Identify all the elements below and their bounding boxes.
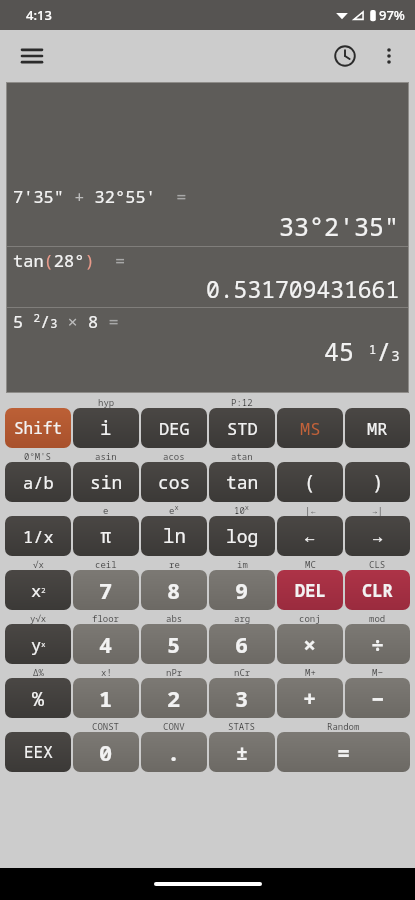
button[interactable]: i [73, 408, 139, 448]
button[interactable]: log [209, 516, 275, 556]
button[interactable]: 8 [141, 570, 207, 610]
button[interactable]: × [277, 624, 343, 664]
staticText: tan(28°) = [13, 249, 126, 272]
staticText: 0°M'S [24, 450, 52, 462]
staticText: ← [304, 523, 316, 549]
button[interactable]: 1 [73, 678, 139, 718]
button[interactable]: 2 [141, 678, 207, 718]
staticText: CLR [362, 579, 393, 602]
staticText: − [371, 683, 385, 713]
button[interactable]: Shift [5, 408, 71, 448]
staticText: ceil [95, 558, 117, 570]
staticText: nPr [166, 666, 183, 678]
staticText: 3 [235, 683, 249, 713]
button[interactable]: MS [277, 408, 343, 448]
button[interactable]: More options [367, 34, 411, 78]
button[interactable]: History [323, 34, 367, 78]
staticText: M+ [305, 666, 316, 678]
staticText: ± [236, 739, 248, 766]
staticText: y√x [30, 612, 47, 624]
staticText: 97% [379, 6, 405, 24]
button[interactable]: x2 [5, 570, 71, 610]
staticText: a/b [23, 471, 54, 494]
button[interactable]: ÷ [345, 624, 410, 664]
button[interactable]: = [277, 732, 410, 772]
staticText: Random [327, 720, 360, 732]
button[interactable]: ± [209, 732, 275, 772]
staticText: hyp [98, 396, 115, 408]
staticText: 45 1/3 [324, 334, 400, 368]
staticText: nCr [234, 666, 251, 678]
staticText: CLS [369, 558, 386, 570]
staticText: + [303, 683, 317, 713]
staticText: log [226, 524, 259, 549]
button[interactable]: CLR [345, 570, 410, 610]
button[interactable]: ) [345, 462, 410, 502]
staticText: 2 [167, 683, 181, 713]
staticText: M− [372, 666, 383, 678]
staticText: i [100, 415, 112, 441]
button[interactable]: 9 [209, 570, 275, 610]
staticText: yx [31, 633, 46, 656]
staticText: ) [372, 469, 384, 495]
staticText: STD [227, 417, 258, 440]
button[interactable]: − [345, 678, 410, 718]
button[interactable]: MR [345, 408, 410, 448]
button[interactable]: ln [141, 516, 207, 556]
staticText: floor [92, 612, 120, 624]
button[interactable]: ← [277, 516, 343, 556]
button[interactable]: 7 [73, 570, 139, 610]
staticText: . [167, 737, 181, 767]
button[interactable]: 5 [141, 624, 207, 664]
staticText: e [103, 504, 109, 516]
staticText: 0.531709431661 [206, 273, 400, 304]
button[interactable]: EEX [5, 732, 71, 772]
staticText: CONST [92, 720, 120, 732]
button[interactable]: % [5, 678, 71, 718]
staticText: 1/x [23, 525, 54, 548]
staticText: 10x [234, 503, 250, 516]
staticText: mod [369, 612, 386, 624]
staticText: P:12 [231, 396, 253, 408]
button[interactable]: cos [141, 462, 207, 502]
button[interactable]: sin [73, 462, 139, 502]
button[interactable]: 4 [73, 624, 139, 664]
button[interactable]: 3 [209, 678, 275, 718]
button[interactable]: DEG [141, 408, 207, 448]
staticText: ÷ [371, 629, 385, 659]
staticText: →| [372, 504, 383, 516]
staticText: CONV [163, 720, 185, 732]
staticText: re [169, 558, 180, 570]
staticText: sin [90, 470, 123, 495]
staticText: cos [158, 470, 191, 495]
staticText: arg [234, 612, 251, 624]
staticText: x2 [31, 579, 46, 602]
staticText: 7'35" + 32°55' = [13, 185, 187, 208]
button[interactable]: STD [209, 408, 275, 448]
staticText: √x [33, 558, 44, 570]
staticText: 0 [99, 737, 113, 767]
button[interactable]: 1/x [5, 516, 71, 556]
staticText: 4:13 [26, 6, 52, 24]
button[interactable]: ( [277, 462, 343, 502]
staticText: asin [95, 450, 117, 462]
button[interactable]: yx [5, 624, 71, 664]
staticText: → [372, 523, 384, 549]
staticText: DEG [159, 417, 190, 440]
button[interactable]: 6 [209, 624, 275, 664]
button[interactable]: π [73, 516, 139, 556]
button[interactable]: a/b [5, 462, 71, 502]
staticText: = [337, 737, 351, 767]
button[interactable]: . [141, 732, 207, 772]
button[interactable]: tan [209, 462, 275, 502]
button[interactable]: + [277, 678, 343, 718]
button[interactable]: → [345, 516, 410, 556]
staticText: conj [299, 612, 321, 624]
staticText: MR [367, 417, 388, 440]
staticText: Shift [14, 417, 63, 439]
button[interactable]: Menu [12, 36, 52, 76]
staticText: 5 [167, 629, 181, 659]
staticText: 5 2/3 × 8 = [13, 310, 119, 333]
button[interactable]: 0 [73, 732, 139, 772]
button[interactable]: DEL [277, 570, 343, 610]
